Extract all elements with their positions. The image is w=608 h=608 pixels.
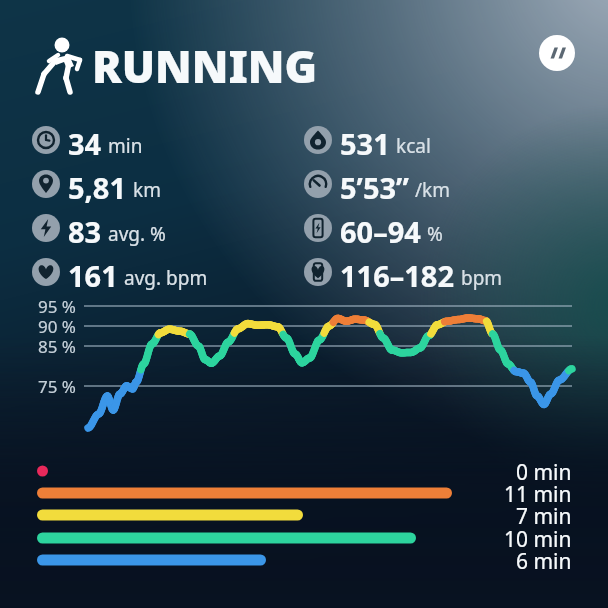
button[interactable]: Running workout summary (0, 0, 608, 608)
